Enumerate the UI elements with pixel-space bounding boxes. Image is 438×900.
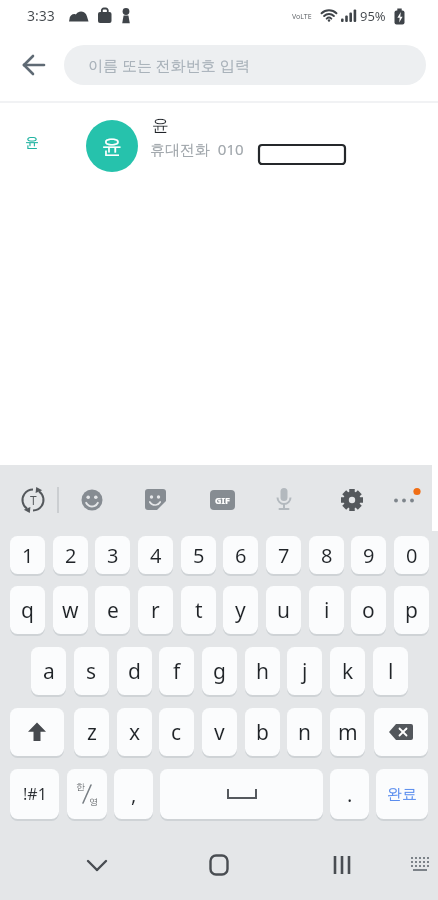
button[interactable]: m [330,708,365,756]
button[interactable] [322,845,362,885]
button[interactable] [80,488,104,512]
staticText: f [173,657,181,686]
button[interactable]: p [394,586,429,634]
button[interactable]: e [95,586,130,634]
staticText: p [405,596,418,625]
staticText: GIF [215,494,230,506]
staticText: x [129,718,141,747]
button[interactable]: q [10,586,45,634]
button[interactable] [10,708,64,756]
button[interactable]: 한 [67,769,107,819]
staticText: j [302,657,308,686]
button[interactable]: , [114,769,153,819]
staticText: 2 [65,542,77,569]
staticText: r [151,596,160,625]
staticText: v [214,718,225,747]
button[interactable]: 0 [394,536,429,574]
button[interactable]: t [181,586,216,634]
button[interactable] [390,484,424,516]
button[interactable]: z [74,708,109,756]
button[interactable]: 9 [351,536,386,574]
staticText: 8 [321,542,333,569]
button[interactable] [145,489,166,510]
staticText: s [86,657,97,686]
button[interactable]: r [138,586,173,634]
button[interactable]: n [287,708,322,756]
staticText: 윤 [25,134,39,152]
button[interactable]: 완료 [376,769,428,819]
button[interactable] [374,708,428,756]
button[interactable]: 8 [309,536,344,574]
button[interactable]: o [351,586,386,634]
button[interactable]: g [202,647,237,695]
button[interactable]: 이름 또는 전화번호 입력 [64,45,426,85]
staticText: T [30,492,37,508]
button[interactable]: 6 [223,536,258,574]
button[interactable]: 4 [138,536,173,574]
staticText: !#1 [23,783,47,805]
button[interactable]: w [53,586,88,634]
staticText: z [87,718,97,747]
staticText: 7 [278,542,290,569]
staticText: d [128,657,141,686]
button[interactable]: . [330,769,369,819]
staticText: u [277,596,290,625]
button[interactable]: j [287,647,322,695]
button[interactable]: 7 [266,536,301,574]
button[interactable]: i [309,586,344,634]
staticText: 4 [150,542,162,569]
button[interactable]: 3 [95,536,130,574]
button[interactable]: v [202,708,237,756]
button[interactable]: T [15,482,51,518]
button[interactable]: 윤 [0,108,438,180]
button[interactable]: 2 [53,536,88,574]
staticText: i [324,596,330,625]
staticText: q [21,596,34,625]
button[interactable] [199,845,239,885]
staticText: w [62,596,79,625]
staticText: o [362,596,375,625]
button[interactable] [402,847,438,883]
button[interactable]: x [117,708,152,756]
button[interactable]: s [74,647,109,695]
staticText: c [171,718,182,747]
staticText: 한 [76,781,85,792]
staticText: 9 [363,542,375,569]
staticText: 0 [406,542,418,569]
staticText: 윤 [102,134,122,159]
button[interactable]: d [117,647,152,695]
button[interactable]: b [245,708,280,756]
staticText: l [388,657,394,686]
staticText: a [43,657,55,686]
button[interactable]: u [266,586,301,634]
staticText: 윤 [152,115,169,136]
staticText: t [195,596,203,625]
staticText: 6 [235,542,247,569]
button[interactable] [160,769,323,819]
button[interactable]: GIF [210,490,235,510]
button[interactable]: !#1 [10,769,59,819]
button[interactable] [273,486,295,514]
staticText: h [256,657,269,686]
staticText: e [107,596,119,625]
staticText: 3 [107,542,119,569]
button[interactable]: y [223,586,258,634]
staticText: g [213,657,226,686]
staticText: 1 [22,542,34,569]
button[interactable] [339,487,365,513]
button[interactable] [14,45,54,85]
button[interactable]: c [159,708,194,756]
staticText: . [347,781,353,808]
button[interactable]: k [330,647,365,695]
button[interactable]: 5 [181,536,216,574]
staticText: , [131,781,137,808]
staticText: 완료 [387,785,417,804]
staticText: y [235,596,246,625]
staticText: 이름 또는 전화번호 입력 [88,55,250,75]
button[interactable]: a [31,647,66,695]
button[interactable]: h [245,647,280,695]
button[interactable]: l [373,647,408,695]
button[interactable]: 1 [10,536,45,574]
button[interactable]: f [159,647,194,695]
button[interactable] [77,845,117,885]
